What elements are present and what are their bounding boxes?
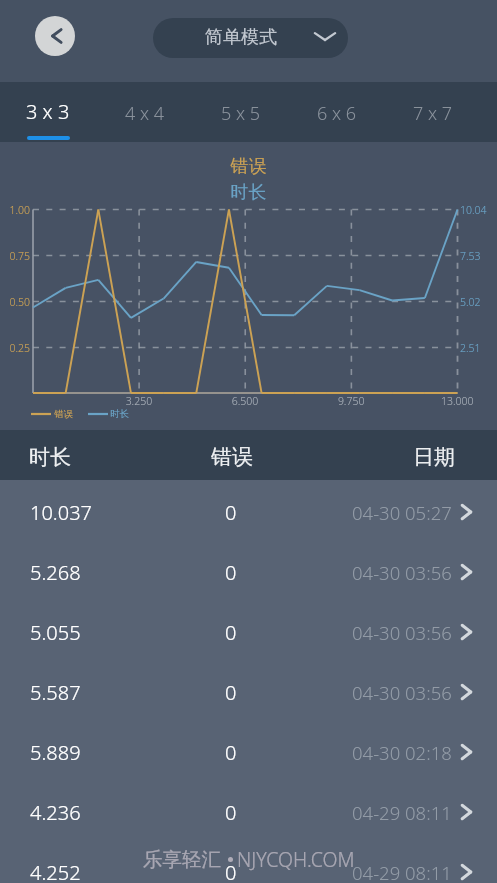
staticText: 0 [225,559,237,586]
staticText: 04-29 08:11 [352,860,452,883]
staticText: 04-30 02:18 [352,740,452,765]
staticText: 4.252 [30,859,81,883]
button[interactable]: 4.252 [0,842,497,883]
staticText: 0 [225,859,237,883]
staticText: 乐享轻汇 [143,847,221,872]
staticText: 0 [225,679,237,706]
button[interactable]: 简单模式 [153,18,348,58]
staticText: 错误 [0,155,497,178]
staticText: 5.587 [30,679,81,706]
staticText: 4.236 [30,799,81,826]
staticText: 0 [225,799,237,826]
button[interactable]: 4 x 4 [96,82,192,142]
button[interactable]: 10.037 [0,482,497,542]
staticText: 日期 [413,444,455,470]
staticText: 5.268 [30,559,81,586]
staticText: 0 [225,499,237,526]
staticText: 04-30 05:27 [352,500,452,525]
staticText: 错误 [211,444,253,470]
button[interactable]: 5 x 5 [192,82,288,142]
staticText: 0 [225,739,237,766]
staticText: NJYCQH.COM [237,846,355,873]
button[interactable]: 5.889 [0,722,497,782]
staticText: 4 x 4 [125,101,164,126]
staticText: 5.889 [30,739,81,766]
staticText: 04-30 03:56 [352,560,452,585]
staticText: 5.055 [30,619,81,646]
staticText: 时长 [0,181,497,204]
staticText: 5 x 5 [221,101,260,126]
staticText: 04-30 03:56 [352,620,452,645]
staticText: 时长 [29,444,71,470]
staticText: 0 [225,619,237,646]
button[interactable]: 3 x 3 [0,82,96,142]
button[interactable]: 6 x 6 [288,82,384,142]
button[interactable]: 5.587 [0,662,497,722]
staticText: 7 x 7 [413,101,452,126]
staticText: 10.037 [30,499,92,526]
staticText: 简单模式 [205,26,277,49]
staticText: 6 x 6 [317,101,356,126]
staticText: 04-30 03:56 [352,680,452,705]
button[interactable]: 5.268 [0,542,497,602]
button[interactable]: 5.055 [0,602,497,662]
button[interactable]: 4.236 [0,782,497,842]
button[interactable]: Back [35,16,75,56]
button[interactable]: 7 x 7 [384,82,480,142]
staticText: 04-29 08:11 [352,800,452,825]
staticText: 3 x 3 [26,98,70,125]
